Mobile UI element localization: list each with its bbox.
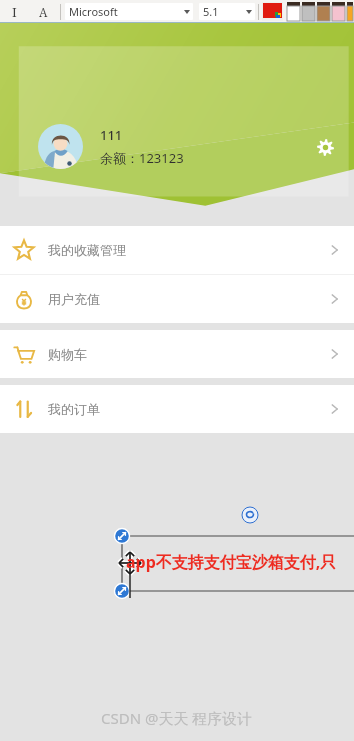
button[interactable]: 我的订单 [0, 385, 354, 433]
button[interactable]: 5.14 [199, 3, 255, 20]
staticText: Microsoft YaHei UI [69, 4, 125, 19]
button[interactable]: 用户充值 [0, 275, 354, 323]
button[interactable]: Swatch [287, 2, 300, 21]
button[interactable]: Color [262, 2, 283, 21]
staticText: app不支持支付宝沙箱支付,只 [126, 551, 337, 573]
button[interactable]: Font style [28, 0, 58, 23]
staticText: I [12, 3, 17, 21]
staticText: 5.14 [203, 4, 223, 19]
button[interactable]: Swatch [347, 2, 353, 21]
staticText: 我的收藏管理 [48, 242, 126, 258]
button[interactable]: Settings [310, 132, 340, 162]
button[interactable]: Italic [0, 0, 28, 23]
staticText: 111 [100, 126, 123, 144]
button[interactable]: Swatch [332, 2, 345, 21]
staticText: 用户充值 [48, 291, 100, 307]
button[interactable]: Swatch [317, 2, 330, 21]
staticText: CSDN @天天 程序设计 [101, 708, 253, 728]
button[interactable]: Microsoft YaHei UI [65, 3, 193, 20]
staticText: 我的订单 [48, 401, 100, 417]
staticText: A [39, 4, 48, 20]
button[interactable]: 我的收藏管理 [0, 226, 354, 274]
staticText: 购物车 [48, 346, 87, 362]
button[interactable]: 购物车 [0, 330, 354, 378]
staticText: 余额：123123 [100, 149, 184, 167]
button[interactable]: Swatch [302, 2, 315, 21]
